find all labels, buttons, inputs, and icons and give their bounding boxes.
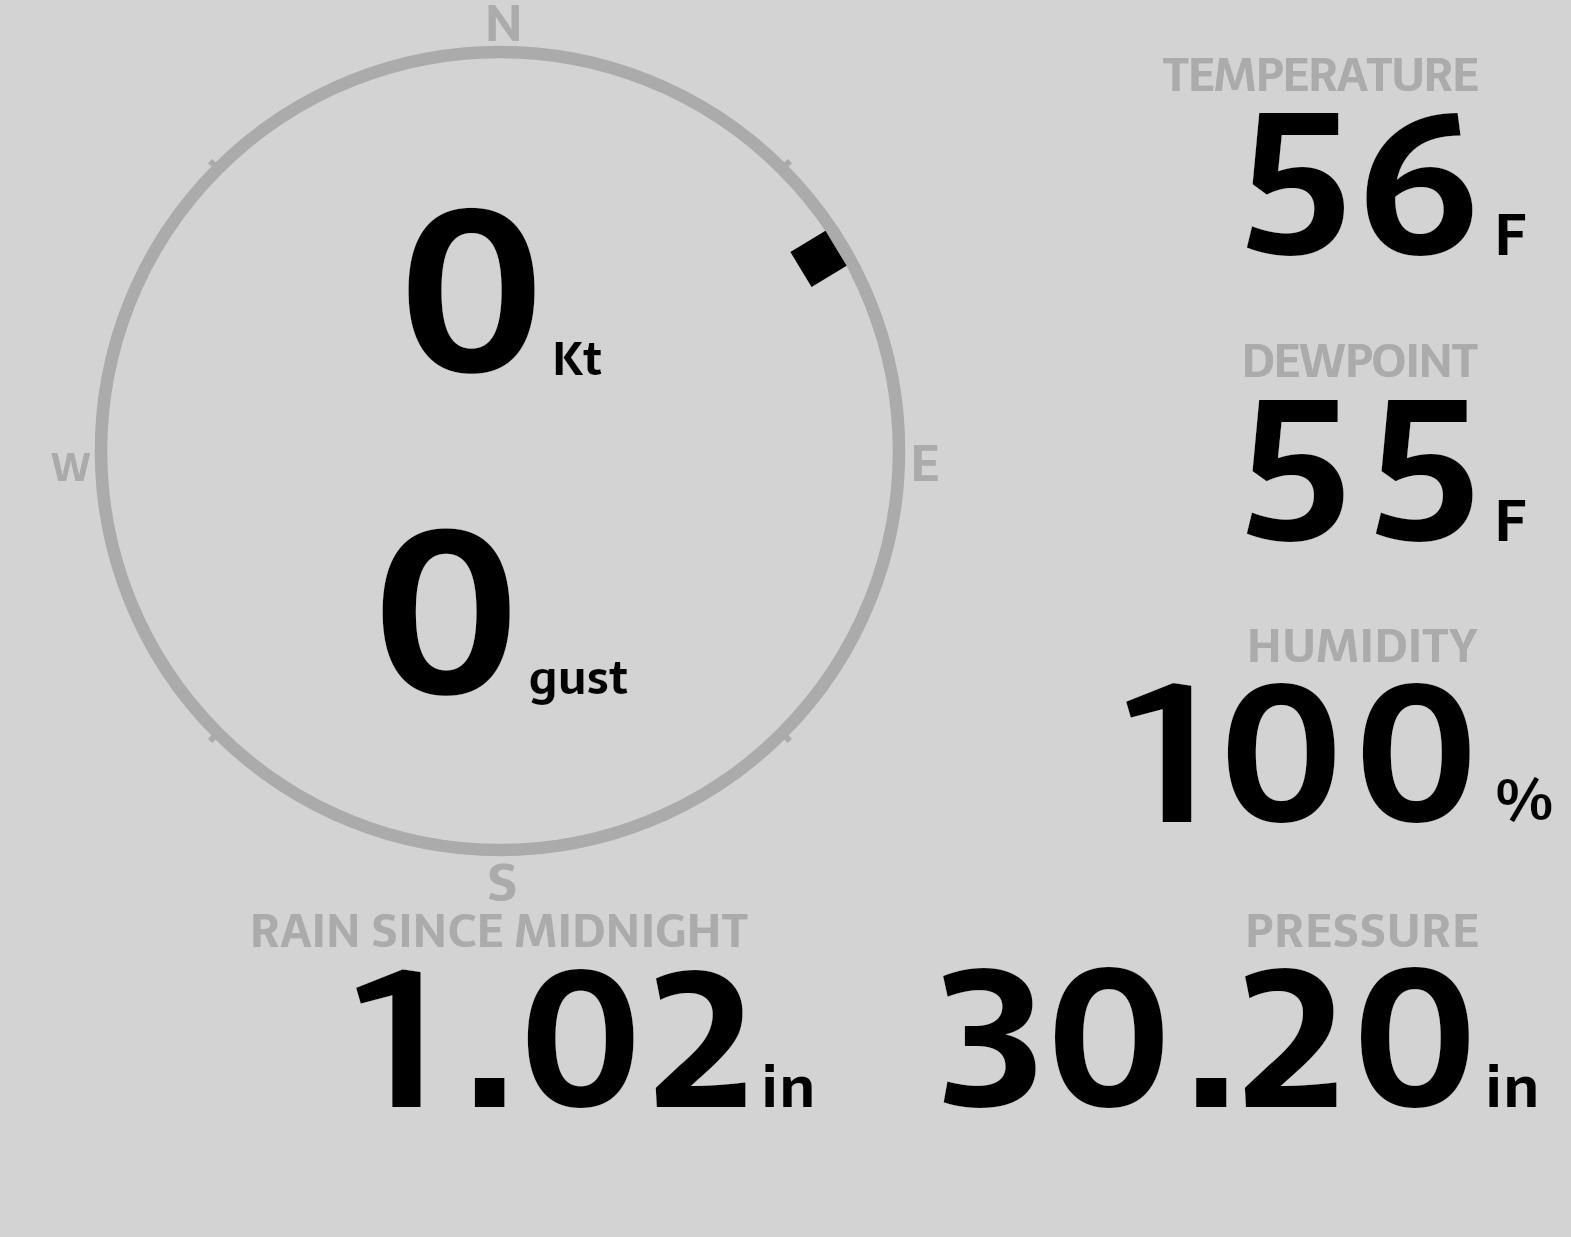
button[interactable]: Temperature 56 degrees Fahrenheit <box>1000 30 1560 280</box>
button[interactable]: Rain since midnight 1.02 inches <box>180 880 820 1130</box>
button[interactable]: Humidity 100 percent <box>1000 595 1560 845</box>
button[interactable]: Pressure 30.20 inches <box>900 880 1560 1130</box>
button[interactable]: Wind direction and speed <box>60 0 940 910</box>
button[interactable]: Dewpoint 55 degrees Fahrenheit <box>1000 310 1560 560</box>
